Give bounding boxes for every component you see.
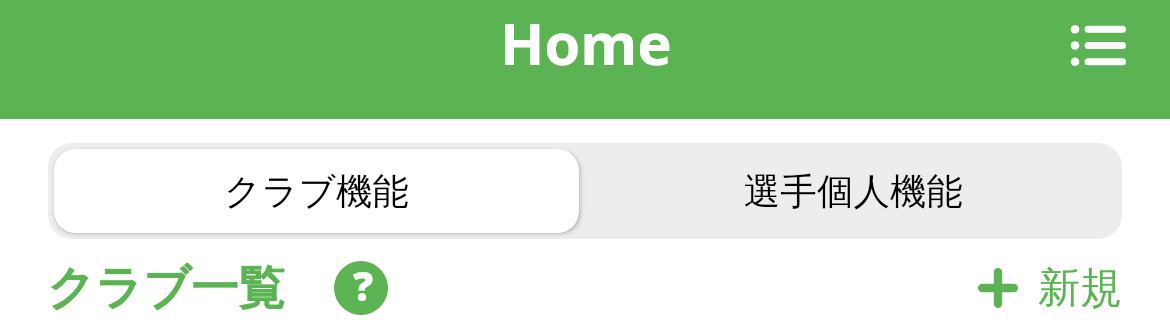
staticText: 新規 [1038,262,1122,315]
staticText: Home [500,3,672,82]
button[interactable]: 新規 [973,257,1122,319]
button[interactable]: 選手個人機能 [585,143,1122,239]
staticText: 選手個人機能 [744,169,963,215]
button[interactable]: Menu [1058,12,1140,78]
button[interactable]: クラブ機能 [54,149,579,233]
button[interactable]: Help [334,261,388,315]
staticText: クラブ機能 [224,169,410,215]
staticText: ? [353,261,374,312]
staticText: クラブ一覧 [47,259,286,318]
